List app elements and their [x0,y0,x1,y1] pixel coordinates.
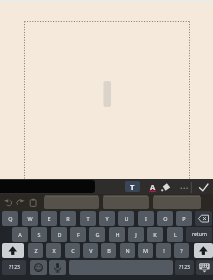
button[interactable]: K [147,227,163,242]
button[interactable]: I [138,211,154,226]
staticText: W [27,215,33,222]
staticText: P [182,215,186,222]
button[interactable]: Z [28,243,43,258]
button[interactable]: B [101,243,116,258]
button[interactable] [159,181,174,192]
staticText: G [95,231,100,238]
staticText: Z [34,247,38,254]
button[interactable] [49,260,66,275]
button[interactable]: ?123 [2,260,26,275]
staticText: T [130,182,135,192]
staticText: A [150,182,156,192]
staticText: K [153,231,157,238]
staticText: ?123 [179,264,190,271]
button[interactable]: V [83,243,98,258]
button[interactable]: C [65,243,80,258]
button[interactable]: A [12,227,28,242]
button[interactable] [2,243,24,258]
staticText: O [163,215,168,222]
button[interactable]: N [120,243,135,258]
button[interactable]: T [125,181,140,192]
button[interactable] [103,196,149,209]
button[interactable]: W [22,211,38,226]
button[interactable] [30,260,47,275]
staticText: X [52,247,56,254]
staticText: return [192,231,207,238]
staticText: H [115,231,120,238]
button[interactable]: L [167,227,183,242]
button[interactable]: M [138,243,153,258]
staticText: C [71,247,75,254]
button[interactable]: F [70,227,86,242]
button[interactable]: Y [99,211,115,226]
staticText: S [37,231,41,238]
button[interactable]: X [46,243,61,258]
button[interactable] [196,181,211,193]
button[interactable] [196,260,213,275]
button[interactable] [153,196,201,209]
staticText: U [124,215,129,222]
staticText: B [107,247,111,254]
button[interactable]: ! [156,243,171,258]
button[interactable]: return [186,227,212,242]
button[interactable]: ?123 [175,260,194,275]
button[interactable]: A [146,181,159,192]
staticText: E [47,215,51,222]
button[interactable] [194,243,213,258]
staticText: Y [105,215,109,222]
button[interactable]: J [128,227,144,242]
staticText: N [125,247,130,254]
button[interactable] [44,196,99,209]
staticText: ?123 [9,264,20,271]
staticText: J [135,231,137,238]
staticText: Q [8,215,13,222]
button[interactable]: D [51,227,67,242]
staticText: I [145,215,147,222]
staticText: M [143,247,148,254]
staticText: T [86,215,90,222]
button[interactable]: E [41,211,57,226]
button[interactable]: P [176,211,192,226]
button[interactable]: S [31,227,47,242]
staticText: R [66,215,70,222]
button[interactable]: O [157,211,173,226]
staticText: A [18,231,22,238]
button[interactable]: G [89,227,105,242]
button[interactable] [195,211,212,226]
button[interactable]: R [60,211,76,226]
button[interactable]: T [80,211,96,226]
staticText: D [57,231,62,238]
button[interactable]: H [109,227,125,242]
button[interactable]: ? [174,243,189,258]
button[interactable]: Q [2,211,18,226]
staticText: ? [180,247,183,254]
staticText: F [77,231,80,238]
button[interactable]: U [118,211,134,226]
staticText: ! [163,247,165,254]
staticText: V [89,247,93,254]
button[interactable] [178,182,190,192]
staticText: L [174,231,177,238]
